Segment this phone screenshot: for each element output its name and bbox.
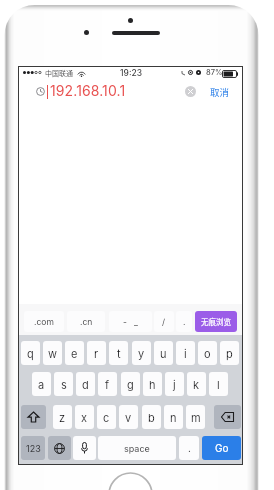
staticText: q [27, 347, 34, 360]
button[interactable]: - _ [109, 311, 152, 332]
staticText: 87% [206, 68, 223, 77]
staticText: . [183, 317, 186, 327]
button[interactable]: .com [24, 311, 64, 332]
staticText: h [149, 378, 156, 391]
staticText: s [61, 378, 67, 391]
button[interactable]: / [154, 311, 174, 332]
staticText: 取消 [210, 85, 230, 99]
button[interactable]: Change keyboard [48, 436, 71, 460]
button[interactable]: x [75, 405, 94, 429]
button[interactable]: s [54, 372, 73, 396]
staticText: 192.168.10.1 [50, 82, 126, 99]
staticText: g [127, 378, 134, 391]
staticText: t [117, 347, 121, 360]
button[interactable]: y [132, 341, 151, 365]
staticText: e [71, 347, 78, 360]
staticText: b [148, 411, 155, 424]
button[interactable]: i [176, 341, 195, 365]
button[interactable]: Backspace [214, 405, 241, 429]
button[interactable]: Dictation [73, 436, 96, 460]
button[interactable]: g [121, 372, 140, 396]
button[interactable]: e [65, 341, 84, 365]
staticText: p [226, 347, 233, 360]
button[interactable]: u [154, 341, 173, 365]
staticText: n [170, 411, 177, 424]
button[interactable]: c [97, 405, 116, 429]
button[interactable]: .cn [67, 311, 105, 332]
staticText: f [105, 378, 110, 391]
staticText: 无痕浏览 [201, 316, 231, 327]
staticText: j [173, 378, 176, 391]
staticText: .cn [80, 317, 93, 327]
button[interactable]: Shift [21, 405, 46, 429]
button[interactable]: z [53, 405, 72, 429]
staticText: - _ [123, 317, 138, 327]
button[interactable]: . [179, 436, 199, 460]
staticText: .com [34, 317, 54, 327]
staticText: z [59, 411, 66, 424]
staticText: k [193, 378, 200, 391]
button[interactable]: q [21, 341, 40, 365]
button[interactable]: b [142, 405, 161, 429]
button[interactable]: d [76, 372, 95, 396]
button[interactable]: r [87, 341, 106, 365]
button[interactable]: t [109, 341, 128, 365]
button[interactable]: 123 [21, 436, 45, 460]
staticText: v [125, 411, 132, 424]
button[interactable]: Home [108, 472, 153, 490]
button[interactable]: v [119, 405, 138, 429]
button[interactable]: Clear text [185, 86, 196, 97]
staticText: u [160, 347, 167, 360]
staticText: i [184, 347, 187, 360]
staticText: y [138, 347, 145, 360]
staticText: 19:23 [120, 68, 143, 78]
staticText: / [162, 317, 166, 327]
staticText: 中国联通 [45, 68, 73, 78]
button[interactable]: o [198, 341, 217, 365]
staticText: l [217, 378, 220, 391]
button[interactable]: h [143, 372, 162, 396]
button[interactable]: a [32, 372, 51, 396]
button[interactable]: 无痕浏览 [195, 311, 237, 332]
staticText: Go [215, 442, 229, 454]
staticText: r [94, 347, 99, 360]
button[interactable]: l [209, 372, 228, 396]
button[interactable]: m [186, 405, 205, 429]
button[interactable]: w [43, 341, 62, 365]
button[interactable]: . [176, 311, 192, 332]
button[interactable]: 取消 [209, 84, 231, 100]
button[interactable]: Go [202, 436, 241, 460]
staticText: d [82, 378, 89, 391]
staticText: a [38, 378, 45, 391]
staticText: m [191, 411, 201, 424]
button[interactable]: j [165, 372, 184, 396]
button[interactable]: space [98, 436, 176, 460]
staticText: 123 [26, 443, 41, 454]
staticText: x [81, 411, 88, 424]
button[interactable]: p [220, 341, 239, 365]
staticText: . [188, 442, 191, 454]
button[interactable]: n [164, 405, 183, 429]
staticText: w [48, 347, 58, 360]
staticText: c [103, 411, 110, 424]
button[interactable]: k [187, 372, 206, 396]
button[interactable]: f [98, 372, 117, 396]
staticText: o [204, 347, 211, 360]
staticText: space [124, 443, 150, 454]
